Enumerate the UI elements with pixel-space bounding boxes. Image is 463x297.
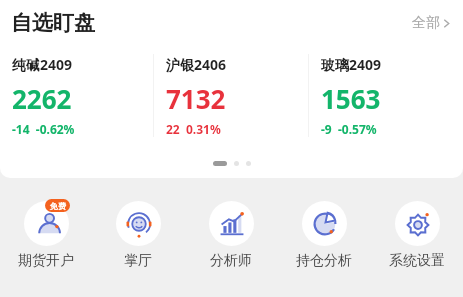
staticText: 玻璃2409 <box>321 55 382 74</box>
staticText: 免费 <box>50 201 66 211</box>
button[interactable]: 掌厅 <box>92 198 184 288</box>
staticText: 掌厅 <box>124 252 152 270</box>
button[interactable]: 系统设置 <box>370 198 463 288</box>
staticText: 7132 <box>166 81 226 116</box>
staticText: 全部 <box>412 14 440 32</box>
staticText: -14 -0.62% <box>12 121 75 137</box>
staticText: 沪银2406 <box>166 55 227 74</box>
staticText: 分析师 <box>210 252 252 270</box>
staticText: 系统设置 <box>389 252 445 270</box>
button[interactable]: 纯碱2409 <box>0 46 153 151</box>
button[interactable]: 沪银2406 <box>154 46 308 151</box>
button[interactable]: 期货开户 <box>0 198 92 288</box>
staticText: 22 0.31% <box>166 121 221 137</box>
staticText: 持仓分析 <box>296 252 352 270</box>
staticText: 期货开户 <box>18 252 74 270</box>
staticText: 1563 <box>321 81 381 116</box>
staticText: 纯碱2409 <box>12 55 73 74</box>
button[interactable]: 全部 <box>410 10 452 36</box>
staticText: 自选盯盘 <box>11 10 95 36</box>
button[interactable]: 玻璃2409 <box>309 46 463 151</box>
button[interactable]: 持仓分析 <box>277 198 370 288</box>
button[interactable]: 分析师 <box>184 198 277 288</box>
staticText: -9 -0.57% <box>321 121 377 137</box>
staticText: 2262 <box>12 81 72 116</box>
